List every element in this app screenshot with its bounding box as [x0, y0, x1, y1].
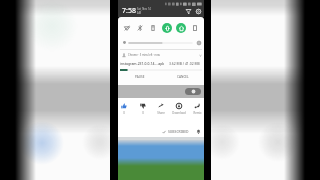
staticText: instagram-231-0-0-14-...apk	[120, 61, 165, 66]
button[interactable]: Remix	[188, 103, 206, 115]
button[interactable]: Toggle 2	[146, 21, 160, 34]
staticText: 0	[142, 111, 144, 115]
staticText: SUBSCRIBED	[168, 129, 189, 134]
button[interactable]: PAUSE	[118, 72, 161, 82]
button[interactable]: Filter notifications	[184, 7, 193, 16]
button[interactable]: CANCEL	[161, 72, 204, 82]
button[interactable]: Like	[114, 103, 133, 115]
button[interactable]: Notifications	[195, 128, 202, 135]
button[interactable]: Toggle 0	[120, 21, 133, 34]
button[interactable]: Quick settings	[196, 40, 202, 46]
staticText: CANCEL	[177, 75, 189, 79]
staticText: PAUSE	[135, 75, 145, 79]
button[interactable]: Toggle 5	[188, 21, 202, 34]
staticText: AM	[137, 11, 142, 15]
staticText: Remix	[193, 111, 202, 115]
staticText: Share	[157, 111, 165, 115]
button[interactable]: Toggle 3 on	[162, 23, 172, 33]
staticText: 0	[123, 111, 125, 115]
button[interactable]: Download	[170, 103, 188, 115]
button[interactable]: Settings	[194, 7, 203, 16]
staticText: 7:58	[122, 6, 136, 16]
button[interactable]: Share	[152, 103, 170, 115]
staticText: Download	[172, 111, 186, 115]
button[interactable]: Toggle 4 on	[176, 23, 186, 33]
button[interactable]: Chrome · 5 mins left · now	[118, 50, 204, 85]
button[interactable]: SUBSCRIBED	[161, 129, 190, 134]
button[interactable]: Clear all	[185, 88, 201, 95]
staticText: Sat, Nov 14	[137, 7, 151, 11]
staticText: Chrome · 5 mins left · now	[128, 53, 160, 57]
staticText: 3.62 MB / 41.02 MB	[169, 61, 200, 66]
button[interactable]: Dislike	[133, 103, 152, 115]
button[interactable]: Toggle 1	[133, 21, 146, 34]
